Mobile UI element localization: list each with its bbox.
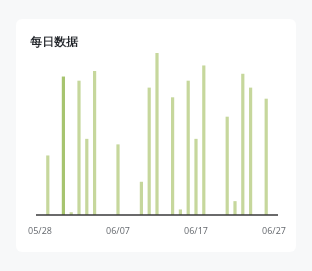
other: 每日数据柱状图 [16, 49, 296, 252]
staticText: 06/07 [101, 224, 135, 236]
staticText: 每日数据 [30, 34, 78, 49]
staticText: 06/27 [257, 224, 291, 236]
staticText: 06/17 [179, 224, 213, 236]
button[interactable]: 每日数据 [16, 19, 296, 252]
staticText: 05/28 [23, 224, 57, 236]
